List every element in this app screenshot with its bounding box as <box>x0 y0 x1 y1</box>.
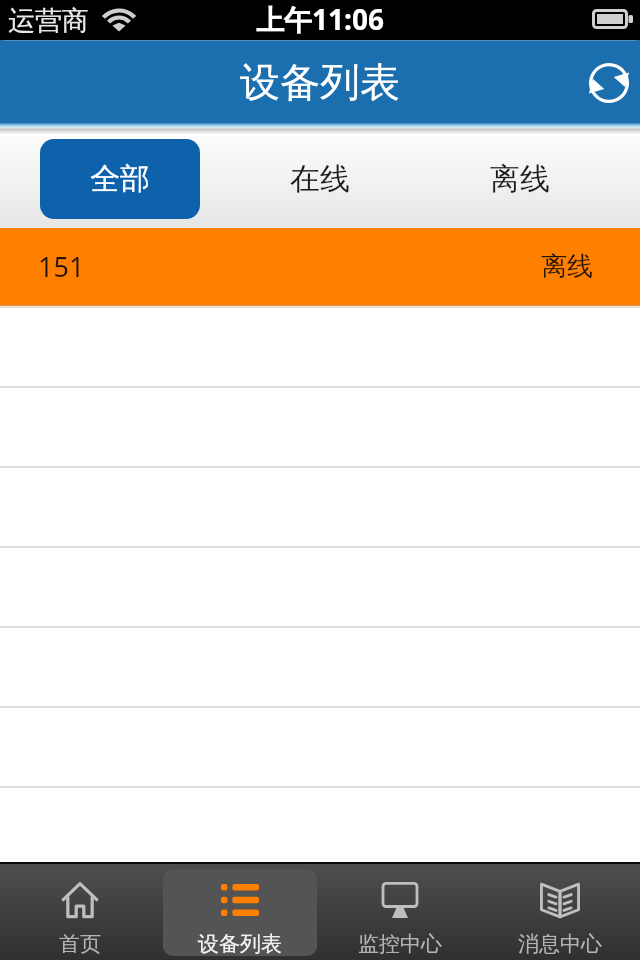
button[interactable]: 151 <box>0 228 640 305</box>
button[interactable]: 首页 <box>0 864 160 960</box>
button[interactable] <box>0 466 640 546</box>
button[interactable] <box>0 386 640 466</box>
button[interactable]: 离线 <box>440 139 600 219</box>
button[interactable]: 设备列表 <box>160 864 320 960</box>
staticText: 151 <box>38 248 85 285</box>
button[interactable]: 在线 <box>240 139 400 219</box>
staticText: 离线 <box>490 160 550 198</box>
staticText: 上午11:06 <box>256 0 384 38</box>
staticText: 在线 <box>290 160 350 198</box>
button[interactable] <box>0 786 640 862</box>
staticText: 首页 <box>59 931 101 957</box>
button[interactable]: 全部 <box>40 139 200 219</box>
staticText: 全部 <box>90 160 150 198</box>
staticText: 设备列表 <box>198 931 282 957</box>
staticText: 设备列表 <box>240 57 400 107</box>
button[interactable] <box>0 546 640 626</box>
button[interactable]: 刷新 <box>578 52 640 114</box>
button[interactable] <box>0 706 640 786</box>
staticText: 监控中心 <box>358 931 442 957</box>
button[interactable]: 监控中心 <box>320 864 480 960</box>
staticText: 消息中心 <box>518 931 602 957</box>
button[interactable] <box>0 626 640 706</box>
button[interactable]: 消息中心 <box>480 864 640 960</box>
staticText: 运营商 <box>8 4 89 38</box>
staticText: 离线 <box>541 250 593 283</box>
